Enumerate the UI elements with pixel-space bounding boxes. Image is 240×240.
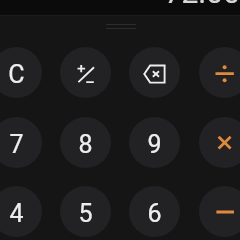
button[interactable]: Multiply <box>199 117 240 168</box>
staticText: 8 <box>78 130 93 159</box>
button[interactable]: 6 <box>129 186 180 237</box>
staticText: 7 <box>9 130 24 159</box>
staticText: 72.00 <box>0 0 240 10</box>
button[interactable]: 4 <box>0 186 42 237</box>
staticText: 9 <box>147 130 162 159</box>
staticText: 5 <box>78 199 93 228</box>
button[interactable]: 9 <box>129 117 180 168</box>
staticText: 6 <box>147 199 162 228</box>
button[interactable]: Divide <box>199 47 240 98</box>
button[interactable]: Subtract <box>199 186 240 237</box>
staticText: 4 <box>9 199 24 228</box>
button[interactable]: C <box>0 47 42 98</box>
staticText: C <box>8 60 25 89</box>
button[interactable]: Plus minus <box>60 47 111 98</box>
button[interactable]: 5 <box>60 186 111 237</box>
button[interactable]: Backspace <box>129 47 180 98</box>
button[interactable]: 7 <box>0 117 42 168</box>
button[interactable]: 8 <box>60 117 111 168</box>
